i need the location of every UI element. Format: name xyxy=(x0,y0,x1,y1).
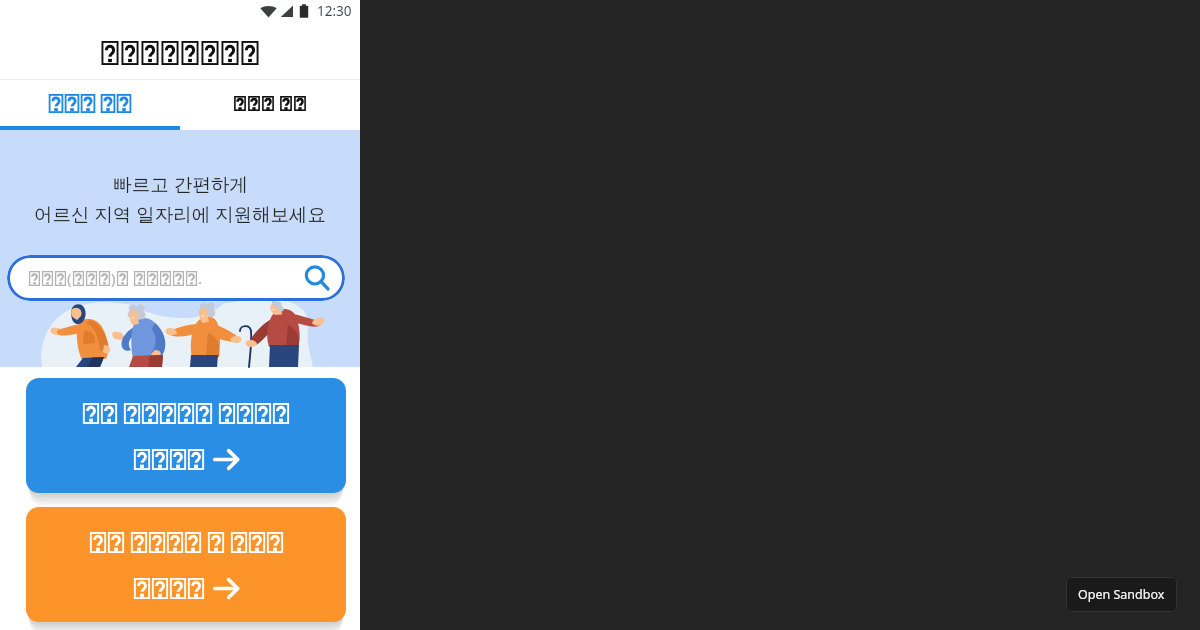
staticText: ( xyxy=(67,268,72,288)
staticText: . xyxy=(198,268,203,288)
button[interactable]: ( xyxy=(7,255,345,301)
button[interactable] xyxy=(26,507,346,622)
staticText: ) xyxy=(111,268,116,288)
staticText: 빠르고 간편하게 xyxy=(113,171,248,196)
staticText: Open Sandbox xyxy=(1078,586,1165,603)
button[interactable]: Open Sandbox xyxy=(1066,577,1177,612)
button[interactable] xyxy=(26,378,346,493)
button[interactable]: 지원 현황 탭 xyxy=(180,80,360,130)
staticText: 어르신 지역 일자리에 지원해보세요 xyxy=(34,201,326,226)
button[interactable]: Search xyxy=(301,262,333,294)
button[interactable]: 일자리 찾기 탭 xyxy=(0,80,180,130)
staticText: 12:30 xyxy=(317,2,352,20)
